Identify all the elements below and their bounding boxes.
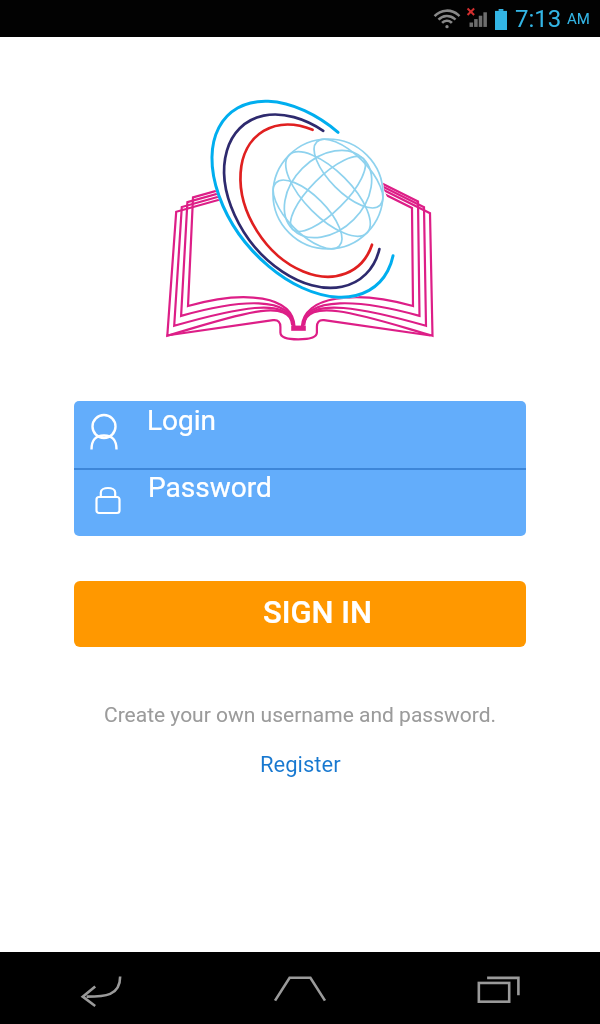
- staticText: Password: [148, 471, 272, 504]
- button[interactable]: SIGN IN: [74, 581, 526, 647]
- staticText: 7:13: [515, 5, 562, 33]
- button[interactable]: Home: [200, 952, 400, 1024]
- staticText: SIGN IN: [263, 594, 373, 630]
- button[interactable]: Register: [254, 750, 347, 780]
- button[interactable]: Back: [0, 952, 200, 1024]
- staticText: AM: [567, 10, 590, 28]
- button[interactable]: Password: [74, 470, 526, 536]
- button[interactable]: Recent apps: [400, 952, 600, 1024]
- button[interactable]: Login: [74, 401, 526, 468]
- staticText: Register: [260, 752, 341, 778]
- staticText: Login: [147, 404, 217, 437]
- staticText: Create your own username and password.: [104, 703, 497, 728]
